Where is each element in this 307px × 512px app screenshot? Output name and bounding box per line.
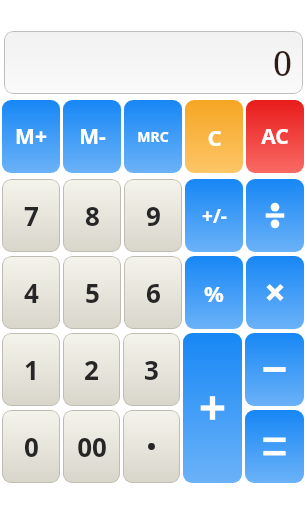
button[interactable]: 5 — [63, 256, 121, 329]
button[interactable]: 2 — [63, 333, 120, 406]
button[interactable]: Divide — [246, 179, 304, 252]
staticText: MRC — [137, 127, 169, 146]
staticText: 7 — [24, 198, 39, 233]
button[interactable]: Memory minus — [63, 100, 121, 173]
staticText: 9 — [146, 198, 161, 233]
button[interactable]: 1 — [2, 333, 60, 406]
staticText: +/- — [202, 203, 227, 229]
button[interactable]: Equals — [245, 410, 304, 483]
button[interactable]: Clear — [185, 100, 243, 173]
staticText: 3 — [144, 352, 159, 387]
staticText: 0 — [24, 429, 39, 464]
button[interactable]: 7 — [2, 179, 60, 252]
button[interactable]: 8 — [63, 179, 121, 252]
button[interactable]: Plus minus — [185, 179, 243, 252]
button[interactable]: Multiply — [246, 256, 304, 329]
button[interactable]: Decimal point — [123, 410, 180, 483]
button[interactable]: Display — [4, 31, 303, 94]
button[interactable]: Memory recall — [124, 100, 182, 173]
staticText: 8 — [85, 198, 100, 233]
button[interactable]: Subtract — [245, 333, 304, 406]
staticText: 6 — [146, 275, 161, 310]
staticText: 0 — [273, 40, 293, 86]
staticText: 1 — [24, 352, 39, 387]
button[interactable]: 4 — [2, 256, 60, 329]
button[interactable]: 3 — [123, 333, 180, 406]
button[interactable]: 9 — [124, 179, 182, 252]
button[interactable]: Percent — [185, 256, 243, 329]
staticText: 5 — [85, 275, 100, 310]
button[interactable]: 6 — [124, 256, 182, 329]
staticText: % — [204, 278, 224, 308]
button[interactable]: All clear — [246, 100, 304, 173]
staticText: M+ — [15, 122, 47, 151]
staticText: 4 — [24, 275, 39, 310]
staticText: AC — [261, 122, 289, 151]
button[interactable]: Double zero — [63, 410, 120, 483]
staticText: M- — [79, 122, 106, 151]
button[interactable]: 0 — [2, 410, 60, 483]
button[interactable]: Add — [183, 333, 242, 483]
button[interactable]: Memory plus — [2, 100, 60, 173]
staticText: 00 — [77, 429, 107, 464]
staticText: C — [207, 122, 222, 152]
staticText: 2 — [84, 352, 99, 387]
